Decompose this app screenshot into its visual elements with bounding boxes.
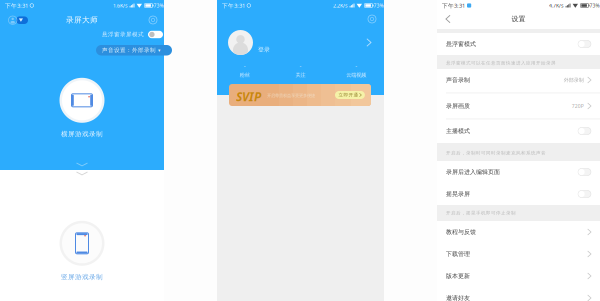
button[interactable]: SVIP	[229, 84, 371, 106]
staticText: 73%	[154, 2, 164, 9]
staticText: 录屏后进入编辑页面	[446, 168, 500, 176]
staticText: -	[244, 62, 246, 70]
staticText: 悬浮窗录屏模式	[102, 31, 144, 38]
staticText: 开启后，摇晃手机即可停止录制	[446, 210, 516, 216]
button[interactable]: 竖屏游戏录制	[59, 221, 104, 281]
staticText: 720P	[572, 102, 584, 109]
staticText: 73%	[590, 2, 600, 9]
staticText: 版本更新	[446, 272, 470, 280]
button[interactable]: 悬浮窗模式	[437, 33, 600, 55]
staticText: 下午3:31	[5, 2, 28, 9]
button[interactable]: 下载管理	[437, 243, 600, 265]
staticText: 下午3:31	[442, 2, 465, 9]
staticText: 开启后，录制时可同时录制麦克风和系统声音	[446, 150, 546, 156]
staticText: 悬浮窗模式	[446, 40, 476, 48]
button[interactable]: Back	[441, 12, 455, 26]
staticText: 设置	[511, 15, 525, 23]
button[interactable]: 登录	[228, 29, 371, 56]
staticText: 立即开通	[338, 92, 358, 98]
button[interactable]: 主播模式	[437, 120, 600, 142]
button[interactable]: -	[217, 62, 273, 78]
staticText: 主播模式	[446, 127, 470, 135]
button[interactable]: 横屏游戏录制	[59, 78, 104, 138]
button[interactable]: 声音设置：外部录制	[96, 45, 172, 55]
staticText: 下午3:31	[222, 2, 245, 9]
staticText: 教程与反馈	[446, 228, 476, 236]
staticText: 1.6K/s	[113, 2, 128, 9]
button[interactable]: -	[328, 62, 384, 78]
staticText: 登录	[258, 46, 270, 53]
staticText: 悬浮窗模式可以在任意页面快速进入应用开始录屏	[446, 60, 556, 66]
staticText: 声音录制	[446, 76, 470, 84]
button[interactable]: 录屏后进入编辑页面	[437, 161, 600, 183]
staticText: 73%	[374, 2, 384, 9]
staticText: -	[355, 62, 357, 70]
button[interactable]: 录屏画质	[437, 95, 600, 117]
staticText: 2.2K/s	[333, 2, 348, 9]
staticText: 横屏游戏录制	[61, 130, 103, 138]
button[interactable]: 教程与反馈	[437, 221, 600, 243]
staticText: 竖屏游戏录制	[61, 273, 103, 281]
button[interactable]: 邀请好友	[437, 287, 600, 301]
staticText: SVIP	[236, 88, 261, 105]
button[interactable]: Settings	[368, 15, 376, 23]
button[interactable]: Settings	[149, 16, 157, 24]
staticText: 摇晃录屏	[446, 190, 470, 198]
button[interactable]: -	[273, 62, 328, 78]
staticText: 关注	[295, 72, 305, 78]
staticText: 云端视频	[346, 72, 366, 78]
staticText: 声音设置：外部录制	[102, 47, 156, 54]
staticText: 粉丝	[240, 72, 250, 78]
staticText: ▾	[158, 47, 160, 53]
staticText: 下载管理	[446, 250, 470, 258]
staticText: 开启尊贵权益享受更多便捷	[267, 93, 315, 98]
button[interactable]: 版本更新	[437, 265, 600, 287]
staticText: 录屏画质	[446, 102, 470, 110]
button[interactable]: 悬浮窗录屏模式	[102, 30, 163, 39]
button[interactable]: Account	[4, 16, 24, 24]
staticText: 4.7K/s	[549, 2, 564, 9]
button[interactable]: 摇晃录屏	[437, 183, 600, 205]
staticText: -	[299, 62, 301, 70]
button[interactable]: 声音录制	[437, 69, 600, 91]
staticText: 外部录制	[564, 77, 584, 83]
staticText: 录屏大师	[66, 15, 98, 25]
staticText: 邀请好友	[446, 294, 470, 301]
